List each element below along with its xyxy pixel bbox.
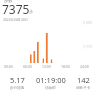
staticText: 00:00: [4, 64, 13, 69]
staticText: 1,770: [83, 44, 92, 49]
staticText: 12:00: [42, 64, 51, 69]
staticText: 24:00: [80, 64, 89, 69]
staticText: 活动时: [45, 86, 56, 91]
staticText: 142: [77, 75, 90, 85]
staticText: 步: [29, 9, 33, 14]
staticText: 5.17: [10, 75, 25, 85]
staticText: 消耗千卡: [76, 86, 91, 91]
button[interactable]: 142: [67, 75, 100, 91]
staticText: 01:19:00: [36, 75, 66, 85]
staticText: 2022年04月24日: [3, 17, 28, 22]
button[interactable]: 5.17: [0, 75, 34, 91]
staticText: 步数: [4, 0, 13, 3]
staticText: 步行距离: [10, 86, 25, 91]
staticText: 7375: [2, 1, 30, 17]
staticText: 18:00: [61, 64, 70, 69]
staticText: 3,000: [83, 20, 92, 25]
staticText: 06:00: [23, 64, 32, 69]
button[interactable]: 01:19:00: [34, 75, 67, 91]
